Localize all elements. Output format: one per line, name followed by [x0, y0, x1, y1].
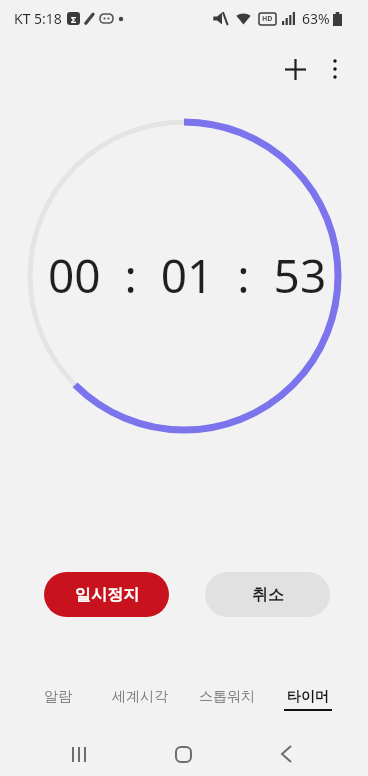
staticText: 세계시각: [112, 688, 168, 706]
staticText: 00 : 01 : 53: [48, 244, 327, 304]
staticText: 취소: [252, 585, 284, 605]
button[interactable]: 알람: [13, 681, 103, 717]
button[interactable]: [57, 732, 101, 776]
staticText: KT 5:18: [14, 9, 62, 28]
button[interactable]: 세계시각: [95, 681, 185, 717]
staticText: Σ: [71, 13, 77, 25]
staticText: 타이머: [287, 688, 329, 706]
staticText: HD: [262, 14, 273, 24]
button[interactable]: [275, 49, 315, 89]
button[interactable]: 스톱워치: [182, 681, 272, 717]
button[interactable]: [161, 732, 205, 776]
staticText: 스톱워치: [199, 688, 255, 706]
staticText: 63%: [302, 9, 330, 28]
staticText: 알람: [44, 688, 72, 706]
button[interactable]: 일시정지: [44, 572, 169, 617]
button[interactable]: 타이머: [263, 681, 353, 717]
button[interactable]: 취소: [205, 572, 330, 617]
staticText: 일시정지: [75, 585, 139, 605]
button[interactable]: [264, 732, 308, 776]
button[interactable]: [315, 49, 355, 89]
